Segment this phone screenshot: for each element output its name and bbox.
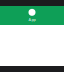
staticText: App bbox=[28, 17, 35, 22]
